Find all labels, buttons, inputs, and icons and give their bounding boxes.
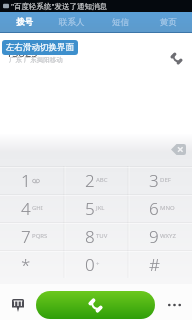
button[interactable]: 4 bbox=[0, 194, 64, 222]
staticText: ABC bbox=[96, 176, 108, 184]
button[interactable]: 9 bbox=[128, 222, 192, 250]
staticText: 8 bbox=[85, 225, 95, 248]
staticText: GHI bbox=[32, 204, 43, 212]
staticText: + bbox=[96, 260, 100, 268]
button[interactable]: 0 bbox=[64, 250, 128, 278]
staticText: 6 bbox=[149, 197, 159, 220]
button[interactable]: 左右滑动切换界面 bbox=[2, 40, 78, 55]
button[interactable]: * bbox=[0, 250, 64, 278]
button[interactable]: 1 bbox=[0, 166, 64, 194]
staticText: 1 bbox=[21, 169, 31, 192]
staticText: JKL bbox=[96, 204, 105, 212]
button[interactable]: Call bbox=[166, 48, 186, 68]
staticText: 5 bbox=[85, 197, 95, 220]
staticText: 拨号 bbox=[16, 17, 33, 28]
button[interactable]: 8 bbox=[64, 222, 128, 250]
staticText: 2 bbox=[85, 169, 95, 192]
staticText: * bbox=[21, 253, 31, 276]
staticText: 7 bbox=[21, 225, 31, 248]
staticText: 左右滑动切换界面 bbox=[6, 42, 74, 53]
staticText: MNO bbox=[160, 204, 175, 212]
staticText: WXYZ bbox=[160, 232, 176, 240]
staticText: 3 bbox=[149, 169, 159, 192]
staticText: 0 bbox=[85, 253, 95, 276]
staticText: DEF bbox=[160, 176, 171, 184]
button[interactable]: 6 bbox=[128, 194, 192, 222]
button[interactable]: # bbox=[128, 250, 192, 278]
button[interactable]: 2 bbox=[64, 166, 128, 194]
staticText: 4 bbox=[21, 197, 31, 220]
button[interactable]: 短信 bbox=[96, 12, 144, 33]
button[interactable]: 黄页 bbox=[144, 12, 192, 33]
button[interactable]: Dial bbox=[36, 291, 155, 319]
staticText: 联系人 bbox=[59, 17, 85, 28]
button[interactable]: 联系人 bbox=[48, 12, 96, 33]
button[interactable]: Backspace bbox=[167, 138, 189, 160]
button[interactable]: 5 bbox=[64, 194, 128, 222]
staticText: # bbox=[149, 253, 160, 276]
staticText: 黄页 bbox=[160, 17, 177, 28]
button[interactable]: More options bbox=[162, 293, 186, 317]
staticText: 13825 bbox=[6, 45, 38, 60]
button[interactable]: 3 bbox=[128, 166, 192, 194]
staticText: 短信 bbox=[112, 17, 129, 28]
button[interactable]: 拨号 bbox=[0, 12, 48, 33]
staticText: PQRS bbox=[32, 232, 48, 240]
button[interactable]: 7 bbox=[0, 222, 64, 250]
staticText: 广东 广东揭阳移动 bbox=[9, 55, 63, 64]
staticText: 9 bbox=[149, 225, 159, 248]
staticText: TUV bbox=[96, 232, 108, 240]
staticText: "百度轻系统"发送了通知消息 bbox=[11, 1, 108, 11]
button[interactable]: Contacts bbox=[6, 293, 30, 317]
